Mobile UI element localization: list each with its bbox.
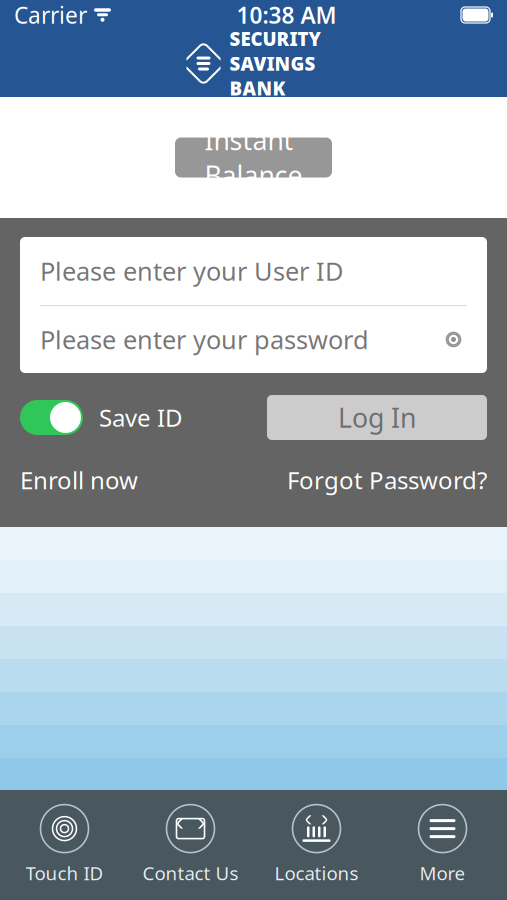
button[interactable]: Please enter your User ID [20,237,487,305]
staticText: 10:38 AM [236,0,336,30]
button[interactable]: Contact Us [127,797,253,893]
button[interactable]: Forgot Password? [287,464,487,496]
staticText: Contact Us [142,861,238,885]
staticText: Please enter your password [40,323,369,356]
staticText: SAVINGS [229,51,315,76]
staticText: Please enter your User ID [40,254,343,288]
button[interactable]: Locations [253,797,379,893]
staticText: Log In [338,400,416,435]
staticText: Carrier [14,0,87,30]
staticText: Save ID [99,402,183,433]
staticText: BANK [229,76,285,101]
staticText: Enroll now [20,464,138,496]
button[interactable]: Please enter your password [20,306,487,373]
staticText: Locations [274,861,358,885]
staticText: Forgot Password? [287,464,487,496]
staticText: Touch ID [25,861,103,885]
button[interactable]: More [379,797,505,893]
staticText: Instant Balance [204,122,302,193]
button[interactable]: Log In [267,395,487,440]
button[interactable]: Save ID [20,400,183,435]
staticText: SECURITY [229,26,320,51]
button[interactable]: Instant Balance [175,137,332,177]
button[interactable]: Touch ID [1,797,127,893]
button[interactable]: Enroll now [20,464,138,496]
staticText: More [419,861,465,885]
